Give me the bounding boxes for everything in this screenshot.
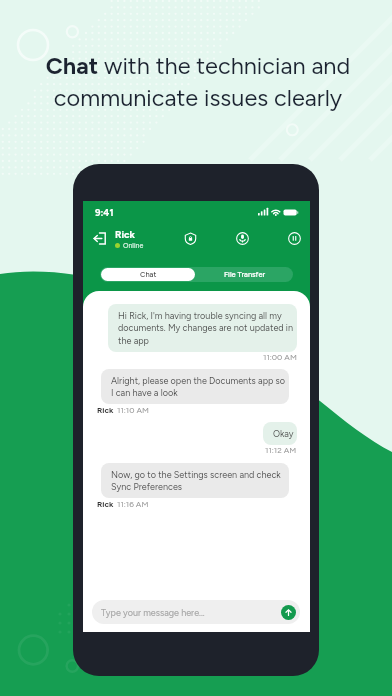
staticText: Okay <box>273 428 294 439</box>
staticText: 11:10 AM <box>117 405 149 415</box>
button[interactable]: Now, go to the Settings screen and check… <box>101 463 289 498</box>
staticText: Chat <box>140 270 157 279</box>
staticText: Rick <box>97 499 114 509</box>
button[interactable]: Voice message <box>236 232 249 245</box>
button[interactable]: Hi Rick, I'm having trouble syncing all … <box>108 304 297 352</box>
staticText: Chat with the technician and communicate… <box>26 52 370 112</box>
button[interactable]: Send message <box>281 605 296 620</box>
staticText: 11:12 AM <box>265 445 297 455</box>
button[interactable]: Chat <box>101 268 195 281</box>
staticText: 11:16 AM <box>117 499 149 509</box>
button[interactable]: Type your message here... <box>92 600 300 624</box>
staticText: Now, go to the Settings screen and check… <box>111 469 286 492</box>
button[interactable]: Okay <box>263 422 297 445</box>
staticText: Online <box>123 241 144 249</box>
button[interactable]: Alright, please open the Documents app s… <box>101 369 289 404</box>
staticText: Type your message here... <box>101 607 205 618</box>
staticText: Alright, please open the Documents app s… <box>111 375 286 398</box>
button[interactable]: Secure session <box>184 232 197 245</box>
button[interactable]: Exit chat <box>93 232 106 245</box>
staticText: 9:41 <box>95 207 114 218</box>
staticText: Rick <box>115 228 135 240</box>
staticText: Hi Rick, I'm having trouble syncing all … <box>118 310 294 346</box>
staticText: File Transfer <box>224 270 266 279</box>
staticText: 11:00 AM <box>263 352 297 362</box>
button[interactable]: File Transfer <box>196 267 293 282</box>
staticText: Rick <box>97 405 114 415</box>
button[interactable]: Pause <box>288 232 301 245</box>
